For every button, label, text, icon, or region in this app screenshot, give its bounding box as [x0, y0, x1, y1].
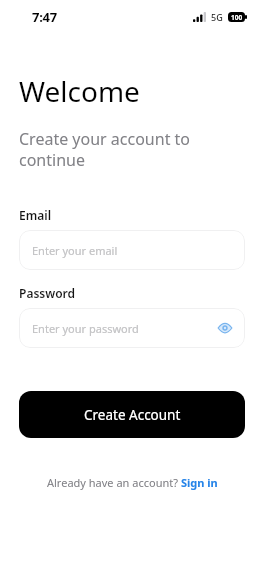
- staticText: Enter your email: [32, 243, 118, 258]
- button[interactable]: Enter your email: [19, 230, 245, 270]
- staticText: Email: [19, 207, 52, 223]
- staticText: Create Account: [84, 406, 181, 424]
- staticText: Already have an account?: [47, 475, 181, 490]
- staticText: Create your account to continue: [19, 128, 214, 171]
- staticText: Enter your password: [32, 321, 139, 336]
- staticText: Sign in: [181, 475, 218, 490]
- button[interactable]: Enter your password: [19, 308, 245, 348]
- staticText: 7:47: [32, 8, 57, 26]
- staticText: Password: [19, 285, 76, 301]
- staticText: Welcome: [19, 72, 140, 110]
- staticText: 5G: [211, 11, 223, 23]
- staticText: 100: [231, 13, 243, 22]
- button[interactable]: Sign in: [181, 475, 218, 490]
- button[interactable]: Create Account: [19, 391, 245, 438]
- button[interactable]: Show password: [215, 318, 235, 338]
